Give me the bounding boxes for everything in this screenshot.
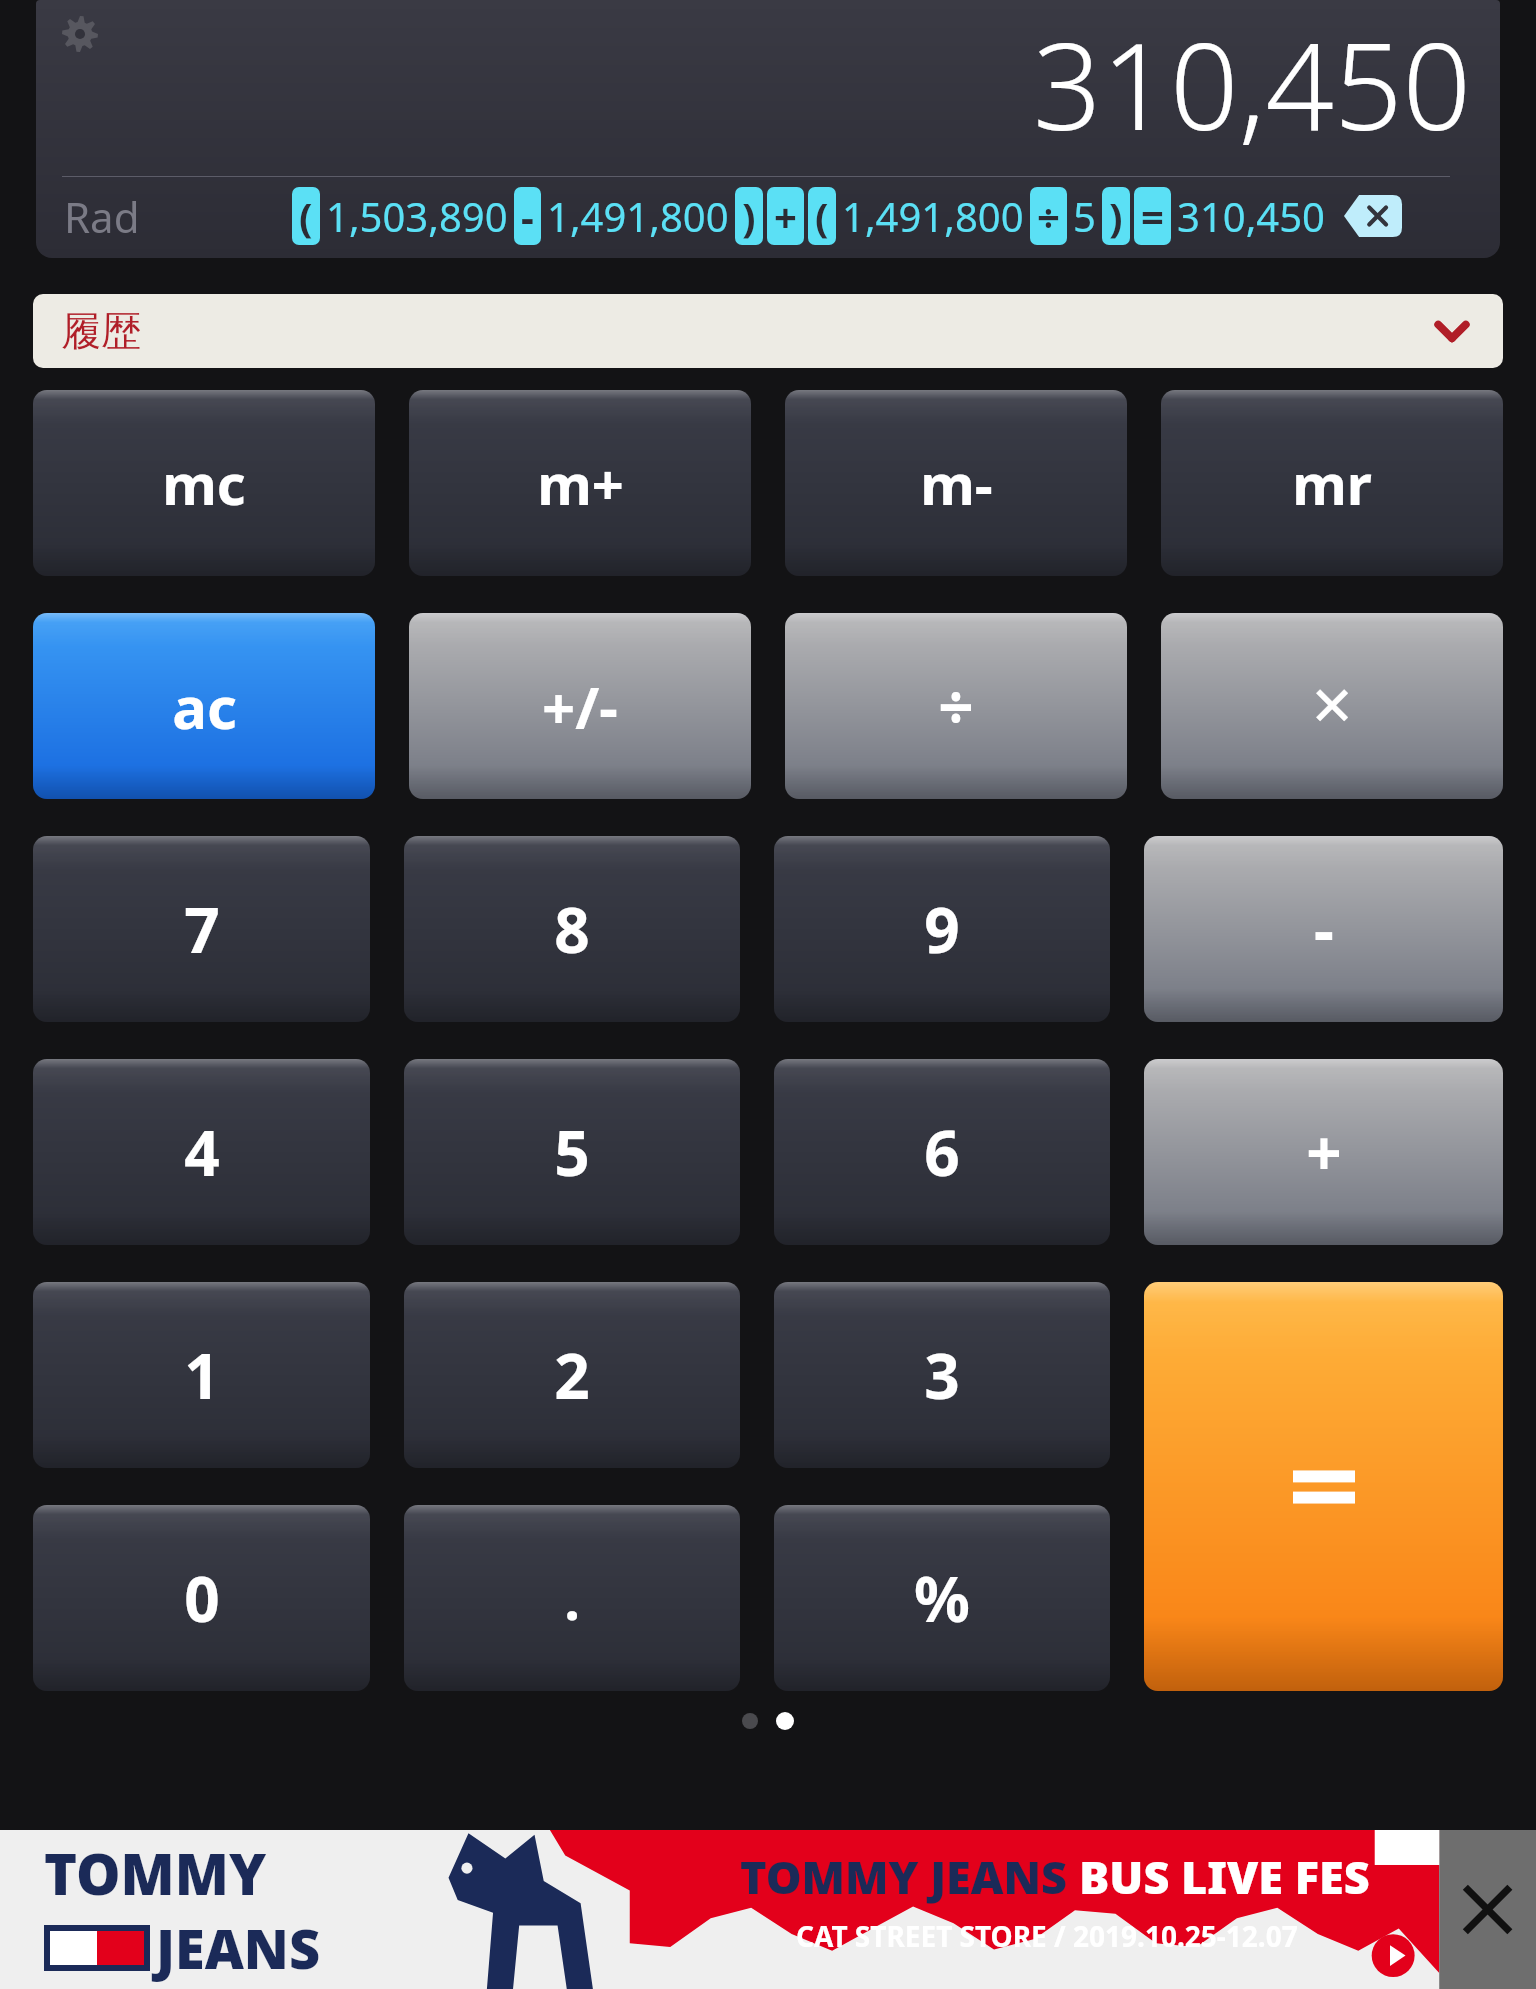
button[interactable]: mc bbox=[33, 390, 375, 576]
button[interactable]: Close ad bbox=[1440, 1830, 1536, 1989]
button[interactable]: TOMMY JEANS bbox=[740, 1846, 1370, 1955]
staticText: 3 bbox=[924, 1333, 960, 1417]
staticText: 310,450 bbox=[1177, 189, 1325, 243]
staticText: = bbox=[1141, 189, 1164, 243]
staticText: ÷ bbox=[1037, 189, 1060, 243]
button[interactable]: Plus bbox=[1144, 1059, 1503, 1245]
button[interactable]: m- bbox=[785, 390, 1127, 576]
button[interactable]: 履歴 bbox=[33, 294, 1503, 368]
staticText: ) bbox=[742, 189, 756, 243]
button[interactable]: m+ bbox=[409, 390, 751, 576]
staticText: ( bbox=[815, 189, 829, 243]
staticText: m+ bbox=[537, 445, 624, 521]
button[interactable]: +/- bbox=[409, 613, 751, 799]
button[interactable]: 8 bbox=[404, 836, 740, 1022]
staticText: 6 bbox=[924, 1110, 960, 1194]
staticText: 1,491,800 bbox=[842, 189, 1024, 243]
staticText: 0 bbox=[184, 1556, 220, 1640]
staticText: 1 bbox=[184, 1333, 220, 1417]
staticText: Rad bbox=[64, 188, 140, 245]
button[interactable]: mr bbox=[1161, 390, 1503, 576]
button[interactable]: 9 bbox=[774, 836, 1110, 1022]
staticText: ac bbox=[172, 667, 237, 746]
staticText: CAT STREET STORE / 2019.10.25-12.07 bbox=[796, 1917, 1298, 1955]
staticText: 5 bbox=[554, 1110, 590, 1194]
button[interactable]: 5 bbox=[404, 1059, 740, 1245]
button[interactable]: Minus bbox=[1144, 836, 1503, 1022]
staticText: 5 bbox=[1073, 189, 1096, 243]
button[interactable]: 1 bbox=[33, 1282, 370, 1468]
staticText: + bbox=[774, 189, 797, 243]
staticText: 1,491,800 bbox=[547, 189, 729, 243]
button[interactable]: . bbox=[404, 1505, 740, 1691]
staticText: mr bbox=[1292, 445, 1372, 521]
staticText: m- bbox=[920, 445, 993, 521]
button[interactable]: 6 bbox=[774, 1059, 1110, 1245]
staticText: - bbox=[521, 189, 534, 243]
button[interactable]: Divide bbox=[785, 613, 1127, 799]
staticText: mc bbox=[162, 445, 246, 521]
staticText: BUS LIVE FES bbox=[1079, 1846, 1370, 1907]
button[interactable]: Multiply bbox=[1161, 613, 1503, 799]
staticText: TOMMY JEANS bbox=[740, 1846, 1079, 1907]
button[interactable]: 2 bbox=[404, 1282, 740, 1468]
button[interactable]: ac bbox=[33, 613, 375, 799]
staticText: TOMMY bbox=[44, 1835, 267, 1911]
staticText: 8 bbox=[554, 887, 590, 971]
button[interactable]: Backspace bbox=[1341, 192, 1405, 240]
staticText: ) bbox=[1109, 189, 1123, 243]
staticText: 7 bbox=[184, 887, 220, 971]
button[interactable]: % bbox=[774, 1505, 1110, 1691]
staticText: 履歴 bbox=[61, 306, 141, 356]
staticText: 1,503,890 bbox=[326, 189, 508, 243]
staticText: - bbox=[1314, 887, 1334, 971]
button[interactable]: 4 bbox=[33, 1059, 370, 1245]
staticText: JEANS bbox=[156, 1911, 321, 1985]
staticText: 2 bbox=[554, 1333, 590, 1417]
staticText: 310,450 bbox=[1033, 2, 1472, 165]
button[interactable]: 0 bbox=[33, 1505, 370, 1691]
staticText: ÷ bbox=[938, 664, 974, 748]
button[interactable]: Equals bbox=[1144, 1282, 1503, 1691]
staticText: ✕ bbox=[1309, 675, 1355, 738]
staticText: ( bbox=[299, 189, 313, 243]
staticText: 4 bbox=[184, 1110, 220, 1194]
button[interactable]: Settings bbox=[56, 10, 104, 58]
staticText: 9 bbox=[924, 887, 960, 971]
button[interactable]: 3 bbox=[774, 1282, 1110, 1468]
staticText: % bbox=[914, 1556, 970, 1640]
button[interactable]: 7 bbox=[33, 836, 370, 1022]
staticText: +/- bbox=[542, 667, 618, 746]
staticText: + bbox=[1306, 1110, 1342, 1194]
staticText: . bbox=[564, 1560, 580, 1636]
